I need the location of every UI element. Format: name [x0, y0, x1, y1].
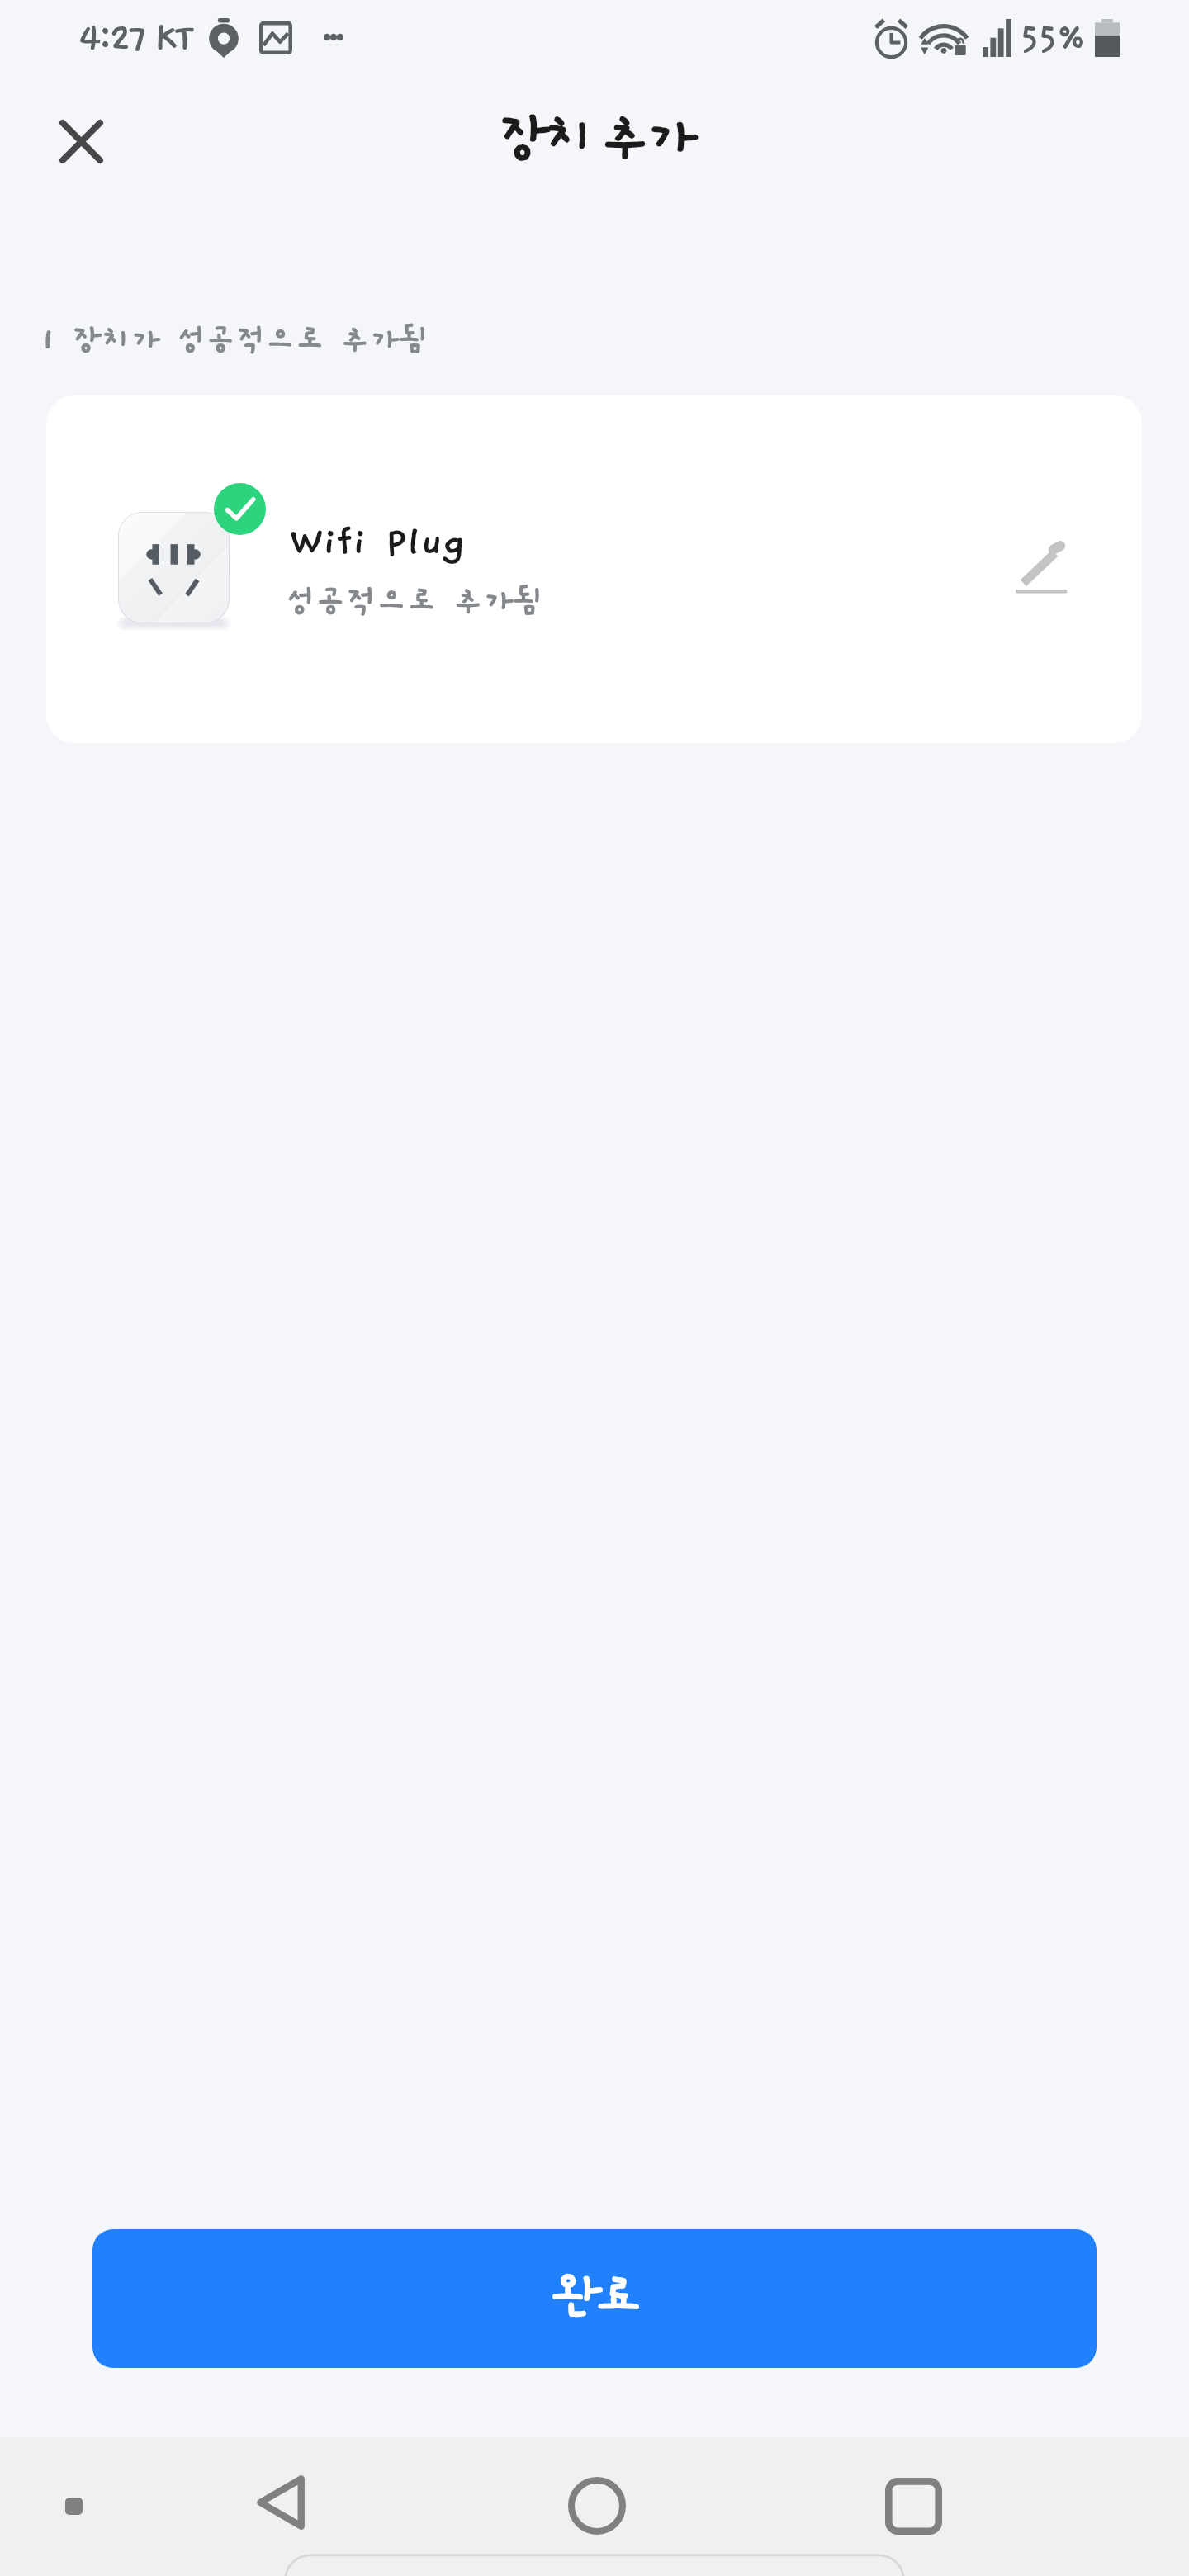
button[interactable]: Home — [556, 2465, 638, 2547]
staticText: 1 장치가 성공적으로 추가됨 — [40, 323, 430, 359]
staticText: 장치 — [496, 107, 590, 172]
staticText: KT — [154, 17, 192, 60]
staticText: 4:27 — [78, 17, 144, 60]
staticText: Wifi Plug — [289, 520, 466, 565]
button[interactable]: Wifi Plug — [46, 395, 1142, 743]
button[interactable]: Recent apps — [872, 2465, 955, 2547]
staticText: 추가 — [599, 107, 693, 172]
button[interactable]: Keyboard switcher — [65, 2498, 83, 2515]
staticText: 성공적으로 추가됨 — [285, 584, 545, 621]
staticText: 55% — [1020, 18, 1086, 59]
button[interactable]: 완료 — [92, 2229, 1097, 2368]
button[interactable]: Rename device — [993, 517, 1089, 613]
staticText: 완료 — [553, 2270, 637, 2327]
button[interactable]: Close — [38, 98, 124, 184]
button[interactable]: Back — [239, 2460, 323, 2545]
